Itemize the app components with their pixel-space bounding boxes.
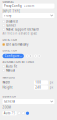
button[interactable]: 100 (34, 80, 48, 85)
button[interactable]: Auto fit (2, 64, 54, 68)
button[interactable]: Fit width (18, 112, 21, 115)
staticText: Edit automatically (6, 43, 28, 46)
button[interactable]: Edit automatically (2, 42, 54, 46)
button[interactable]: Proxy (2, 13, 54, 18)
staticText: All files in a shared space (2, 32, 37, 35)
button[interactable]: Decrease left (26, 55, 29, 57)
button[interactable]: Native support (default) (2, 27, 54, 31)
button[interactable]: Disabled (2, 19, 54, 23)
staticText: DETECTION (2, 38, 17, 42)
button[interactable]: Proxy Config (2, 3, 54, 8)
staticText: ZOOM (2, 106, 10, 109)
staticText: BEHAVIOR (2, 95, 16, 98)
button[interactable]: Increase left (29, 55, 32, 57)
button[interactable]: Apply (26, 112, 29, 115)
button[interactable]: 240 (34, 85, 48, 90)
staticText: Height (2, 86, 12, 89)
staticText: Native support (default) (6, 28, 39, 31)
button[interactable]: Configure… (2, 54, 24, 58)
staticText: 240 (35, 86, 41, 89)
staticText: Width (2, 81, 10, 84)
staticText: Configure… (5, 54, 22, 58)
staticText: Disabled (6, 20, 18, 23)
staticText: Manual (6, 69, 15, 72)
staticText: Proxy Config (4, 4, 22, 8)
button[interactable]: Increase right (38, 55, 40, 57)
button[interactable]: General (2, 99, 54, 104)
staticText: GENERAL (2, 0, 13, 4)
staticText: 75 (11, 111, 15, 115)
staticText: General (4, 100, 15, 103)
staticText: AUTOMATION SETTINGS (2, 60, 33, 64)
button[interactable]: Auto (2, 111, 17, 115)
staticText: px (50, 86, 53, 89)
button[interactable]: Manual (2, 68, 54, 72)
staticText: Auto (4, 111, 11, 115)
staticText: Auto fit (6, 65, 17, 68)
button[interactable]: Fit page (22, 112, 25, 115)
button[interactable]: Decrease right (34, 55, 37, 57)
staticText: INPUT TYPE (2, 10, 19, 13)
staticText: Tunnel (6, 24, 16, 27)
staticText: Proxy (4, 14, 11, 17)
button[interactable]: Tunnel (2, 23, 54, 27)
staticText: 100 (35, 81, 41, 84)
staticText: MARGINS (2, 76, 14, 79)
staticText: Custom (24, 4, 34, 8)
staticText: px (50, 81, 53, 84)
staticText: DIRECTION (2, 49, 17, 52)
